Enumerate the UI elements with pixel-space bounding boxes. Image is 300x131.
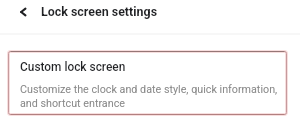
staticText: Customize the clock and date style, quic… bbox=[20, 83, 279, 109]
button[interactable]: Custom lock screen bbox=[8, 51, 287, 115]
staticText: Custom lock screen bbox=[20, 60, 126, 74]
button[interactable]: Back bbox=[13, 2, 33, 22]
staticText: Lock screen settings bbox=[41, 4, 158, 19]
